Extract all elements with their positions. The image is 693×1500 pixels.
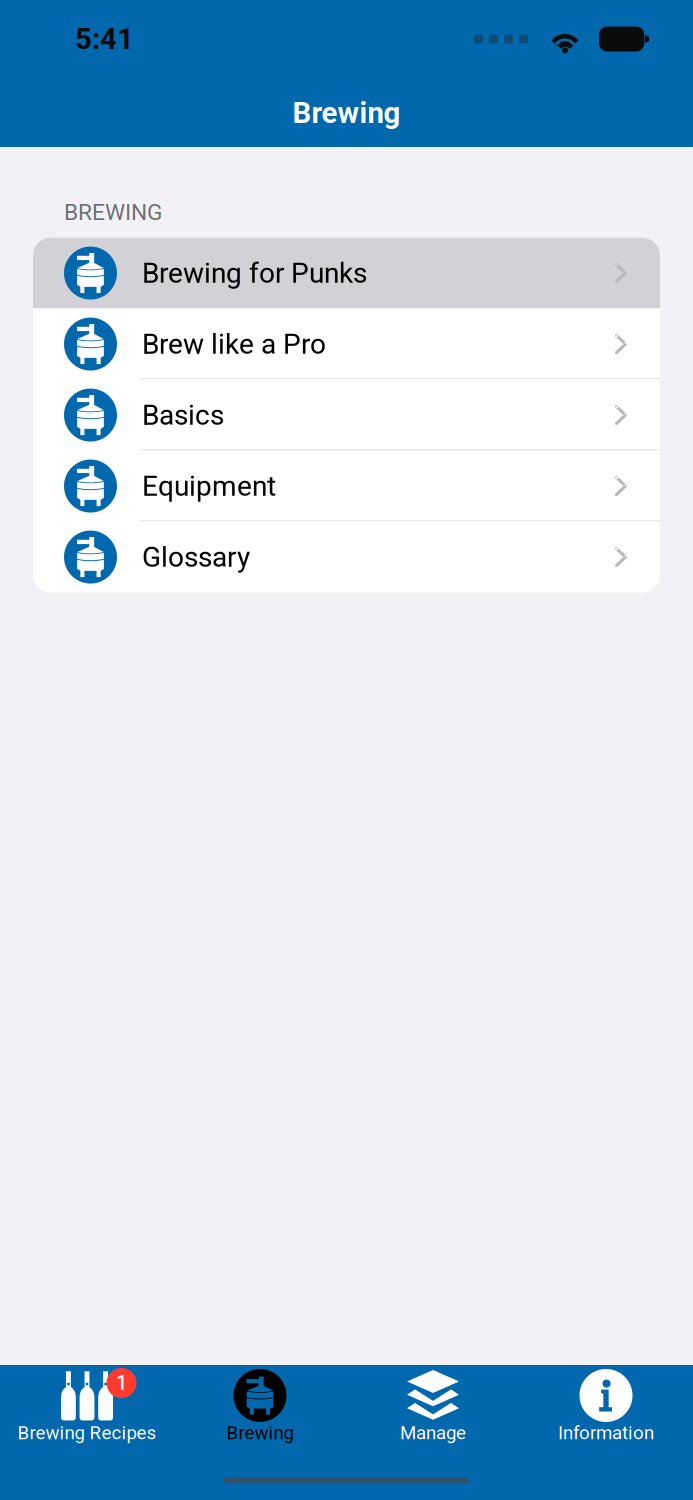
button[interactable]: Manage	[346, 1369, 519, 1464]
staticText: Equipment	[142, 470, 276, 502]
button[interactable]: Brewing for Punks	[33, 238, 660, 309]
staticText: Manage	[400, 1422, 466, 1444]
button[interactable]: Glossary	[33, 522, 660, 593]
button[interactable]: Brew like a Pro	[33, 309, 660, 380]
button[interactable]: Basics	[33, 380, 660, 451]
staticText: Glossary	[142, 541, 250, 573]
staticText: Information	[558, 1422, 654, 1444]
staticText: Brewing	[292, 96, 400, 130]
staticText: BREWING	[64, 199, 162, 226]
staticText: 1	[116, 1371, 127, 1395]
button[interactable]: Information	[519, 1369, 692, 1464]
staticText: Brewing	[226, 1422, 293, 1444]
staticText: Brewing for Punks	[142, 257, 367, 289]
staticText: Basics	[142, 399, 224, 431]
button[interactable]: 1	[0, 1369, 173, 1464]
button[interactable]: Brewing	[173, 1369, 346, 1464]
button[interactable]: Equipment	[33, 451, 660, 522]
staticText: Brew like a Pro	[142, 328, 326, 360]
staticText: Brewing Recipes	[17, 1422, 156, 1444]
staticText: 5:41	[75, 22, 134, 56]
